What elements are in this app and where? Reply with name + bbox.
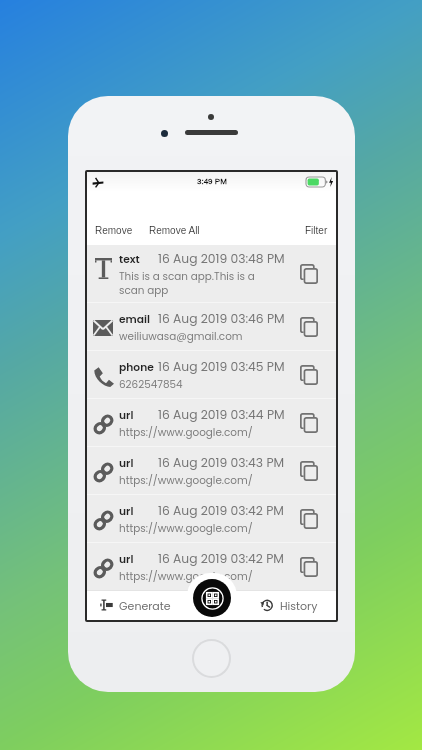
staticText: https://www.google.com/: [119, 425, 253, 440]
button[interactable]: History: [256, 590, 336, 620]
button[interactable]: url: [87, 447, 336, 495]
button[interactable]: Generate: [87, 590, 175, 620]
staticText: 16 Aug 2019 03:43 PM: [158, 454, 285, 471]
staticText: Generate: [119, 598, 171, 613]
staticText: 16 Aug 2019 03:48 PM: [158, 250, 285, 267]
staticText: 16 Aug 2019 03:42 PM: [158, 502, 284, 519]
staticText: url: [119, 552, 134, 567]
staticText: weiliuwasa@gmail.com: [119, 329, 243, 344]
staticText: 16 Aug 2019 03:44 PM: [158, 406, 285, 423]
staticText: This is a scan app.This is a scan app: [119, 269, 255, 298]
button[interactable]: Filter: [297, 222, 336, 239]
button[interactable]: url: [87, 399, 336, 447]
button[interactable]: Remove All: [141, 222, 208, 239]
staticText: 16 Aug 2019 03:46 PM: [158, 310, 285, 327]
staticText: Remove: [95, 225, 133, 236]
button[interactable]: Remove: [87, 222, 141, 239]
staticText: 3:49 PM: [197, 177, 227, 186]
button[interactable]: Scan QR code: [193, 579, 231, 617]
button[interactable]: Copy: [294, 245, 336, 303]
button[interactable]: url: [87, 495, 336, 543]
staticText: https://www.google.com/: [119, 473, 253, 488]
button[interactable]: Copy: [294, 543, 336, 591]
button[interactable]: Copy: [294, 399, 336, 447]
button[interactable]: Copy: [294, 303, 336, 351]
staticText: url: [119, 456, 134, 471]
button[interactable]: text: [87, 245, 336, 303]
staticText: phone: [119, 360, 154, 375]
button[interactable]: url: [87, 543, 336, 591]
staticText: 16 Aug 2019 03:42 PM: [158, 550, 284, 567]
staticText: url: [119, 504, 134, 519]
staticText: https://www.google.com/: [119, 521, 253, 536]
button[interactable]: Copy: [294, 447, 336, 495]
staticText: Remove All: [149, 225, 200, 236]
button[interactable]: phone: [87, 351, 336, 399]
button[interactable]: email: [87, 303, 336, 351]
staticText: 6262547854: [119, 377, 183, 392]
staticText: text: [119, 252, 140, 267]
staticText: History: [280, 598, 318, 613]
staticText: https://www.google.com/: [119, 569, 253, 584]
staticText: email: [119, 312, 150, 327]
button[interactable]: Copy: [294, 495, 336, 543]
button[interactable]: Copy: [294, 351, 336, 399]
staticText: Filter: [305, 225, 328, 236]
staticText: url: [119, 408, 134, 423]
staticText: 16 Aug 2019 03:45 PM: [158, 358, 285, 375]
